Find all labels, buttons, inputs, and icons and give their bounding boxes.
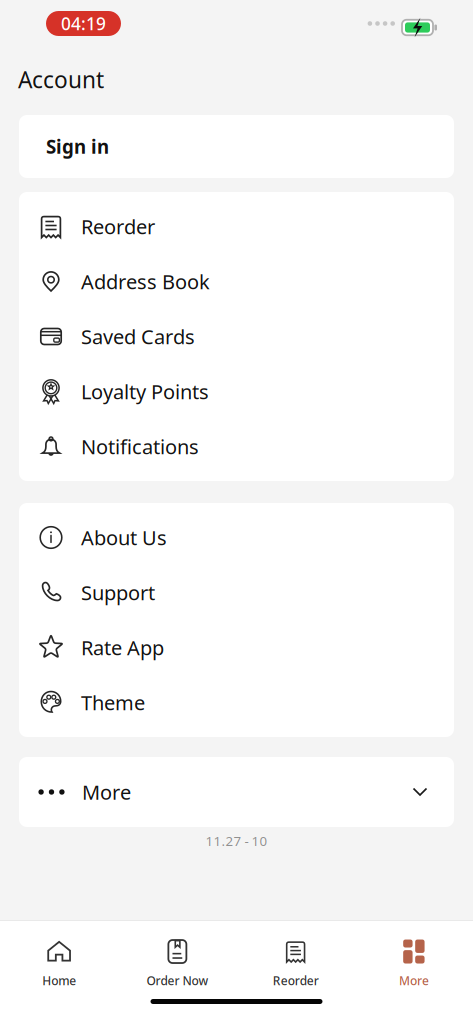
button[interactable]: Saved Cards bbox=[19, 309, 454, 364]
staticText: Sign in bbox=[46, 134, 109, 159]
staticText: Account bbox=[18, 64, 104, 94]
staticText: Theme bbox=[81, 689, 145, 716]
staticText: Saved Cards bbox=[81, 323, 195, 350]
button[interactable]: Rate App bbox=[19, 620, 454, 675]
staticText: Support bbox=[81, 579, 155, 606]
staticText: Order Now bbox=[146, 972, 208, 988]
staticText: More bbox=[399, 972, 429, 988]
button[interactable]: More bbox=[355, 921, 473, 991]
staticText: More bbox=[82, 779, 131, 805]
button[interactable]: Loyalty Points bbox=[19, 364, 454, 419]
staticText: About Us bbox=[81, 524, 167, 551]
staticText: Reorder bbox=[273, 972, 319, 988]
button[interactable]: More bbox=[19, 757, 454, 827]
staticText: 11.27 - 10 bbox=[205, 832, 267, 850]
staticText: 04:19 bbox=[61, 12, 106, 35]
staticText: Rate App bbox=[81, 634, 164, 661]
staticText: Loyalty Points bbox=[81, 378, 209, 405]
staticText: Notifications bbox=[81, 433, 199, 460]
staticText: Address Book bbox=[81, 268, 210, 295]
staticText: Home bbox=[42, 972, 76, 988]
button[interactable]: Address Book bbox=[19, 254, 454, 309]
button[interactable]: Reorder bbox=[19, 199, 454, 254]
button[interactable]: Support bbox=[19, 565, 454, 620]
staticText: Reorder bbox=[81, 213, 155, 240]
button[interactable]: Home bbox=[0, 921, 118, 991]
button[interactable]: Reorder bbox=[236, 921, 355, 991]
button[interactable]: Theme bbox=[19, 675, 454, 730]
button[interactable]: Sign in bbox=[19, 115, 454, 178]
button[interactable]: About Us bbox=[19, 510, 454, 565]
button[interactable]: Notifications bbox=[19, 419, 454, 474]
button[interactable]: Order Now bbox=[118, 921, 236, 991]
